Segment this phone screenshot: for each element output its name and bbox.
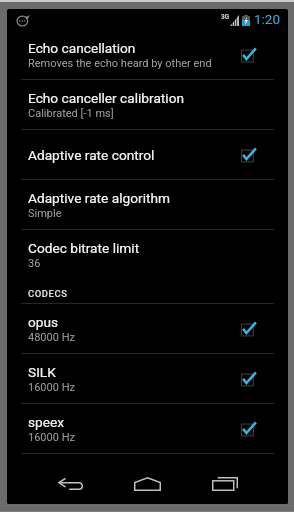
staticText: Adaptive rate algorithm bbox=[28, 190, 170, 206]
button[interactable]: Home bbox=[124, 454, 171, 504]
staticText: 48000 Hz bbox=[28, 331, 75, 344]
staticText: 16000 Hz bbox=[28, 381, 75, 394]
staticText: Simple bbox=[28, 207, 62, 220]
button[interactable]: Toggle bbox=[236, 314, 266, 344]
staticText: Calibrated [-1 ms] bbox=[28, 107, 114, 120]
button[interactable]: Toggle bbox=[236, 140, 266, 170]
button[interactable]: Toggle bbox=[236, 40, 266, 70]
staticText: 3G bbox=[221, 13, 230, 21]
staticText: Codec bitrate limit bbox=[28, 240, 140, 256]
staticText: Adaptive rate control bbox=[28, 147, 155, 163]
button[interactable]: Adaptive rate algorithm bbox=[7, 180, 288, 229]
button[interactable]: SILK bbox=[7, 354, 288, 403]
button[interactable]: Adaptive rate control bbox=[7, 130, 288, 179]
staticText: 36 bbox=[28, 257, 41, 270]
staticText: CODECS bbox=[28, 288, 68, 299]
button[interactable]: Echo cancellation bbox=[7, 30, 288, 79]
staticText: Echo cancellation bbox=[28, 40, 136, 56]
button[interactable]: Codec bitrate limit bbox=[7, 230, 288, 279]
button[interactable]: Toggle bbox=[236, 364, 266, 394]
button[interactable]: Echo canceller calibration bbox=[7, 80, 288, 129]
staticText: 1:20 bbox=[254, 11, 281, 27]
staticText: SILK bbox=[28, 364, 56, 380]
staticText: 16000 Hz bbox=[28, 431, 75, 444]
button[interactable]: Toggle bbox=[236, 414, 266, 444]
button[interactable]: Recent apps bbox=[201, 454, 248, 504]
button[interactable]: speex bbox=[7, 404, 288, 453]
button[interactable]: opus bbox=[7, 304, 288, 353]
staticText: opus bbox=[28, 314, 59, 330]
staticText: speex bbox=[28, 414, 65, 430]
staticText: Echo canceller calibration bbox=[28, 90, 185, 106]
staticText: Removes the echo heard by other end bbox=[28, 57, 212, 70]
button[interactable]: Back bbox=[47, 454, 94, 504]
